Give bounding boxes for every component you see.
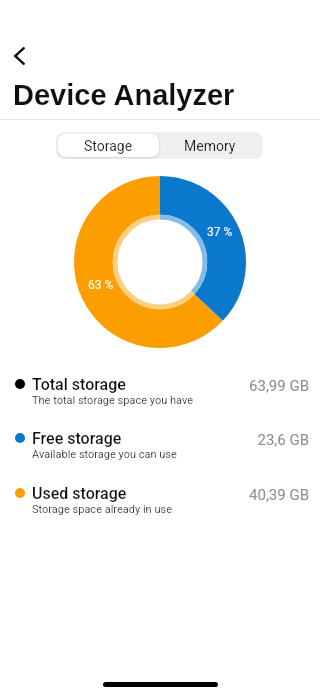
staticText: 40,39 GB (249, 486, 309, 504)
staticText: 23,6 GB (257, 431, 309, 449)
staticText: 63 % (88, 278, 114, 292)
staticText: 37 % (207, 225, 233, 239)
staticText: Memory (184, 138, 236, 154)
button[interactable]: Free storage (0, 429, 320, 463)
button[interactable]: Storage (58, 134, 159, 157)
staticText: Total storage (32, 375, 126, 394)
staticText: 63,99 GB (249, 377, 309, 395)
button[interactable]: Back (0, 36, 39, 76)
staticText: Storage (84, 138, 133, 154)
staticText: Available storage you can use (32, 448, 177, 461)
staticText: Free storage (32, 429, 122, 448)
staticText: Device Analyzer (13, 79, 235, 111)
button[interactable]: Used storage (0, 484, 320, 518)
staticText: The total storage space you have (32, 394, 194, 407)
button[interactable]: Memory (159, 134, 261, 157)
button[interactable]: Total storage (0, 375, 320, 409)
staticText: Used storage (32, 484, 127, 503)
staticText: Storage space already in use (32, 503, 172, 516)
